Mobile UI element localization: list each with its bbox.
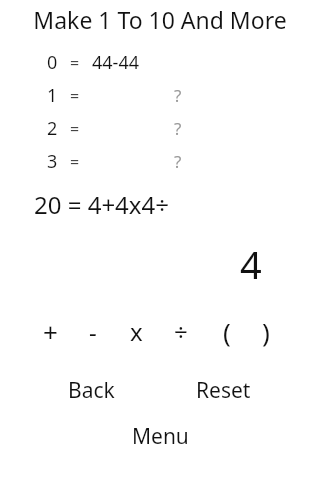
button[interactable]: ( [210,314,244,348]
staticText: 0 [47,50,58,75]
staticText: 1 [47,83,58,108]
staticText: Menu [132,422,189,451]
staticText: - [89,315,97,348]
button[interactable]: 2 [0,112,320,145]
staticText: 3 [47,149,58,174]
staticText: Make 1 To 10 And More [33,4,287,35]
staticText: Reset [196,376,251,402]
staticText: 4 [240,238,262,290]
button[interactable]: ) [249,314,283,348]
button[interactable]: - [76,314,110,348]
button[interactable]: Reset [186,372,261,406]
button[interactable]: 0 [0,46,320,79]
staticText: ? [174,84,182,107]
staticText: ) [262,314,270,348]
staticText: 2 [47,116,58,141]
staticText: = [70,52,80,74]
button[interactable]: x [119,314,153,348]
staticText: x [130,315,143,348]
staticText: ? [174,117,182,140]
staticText: 44-44 [92,50,139,75]
staticText: + [43,314,58,348]
staticText: Back [68,376,115,402]
staticText: = [70,151,80,173]
button[interactable]: 20 = 4+4x4÷ [0,180,320,228]
button[interactable]: 3 [0,145,320,178]
button[interactable]: Back [58,372,125,406]
button[interactable]: Menu [122,418,199,455]
button[interactable]: + [33,314,67,348]
button[interactable]: 1 [0,79,320,112]
button[interactable]: ÷ [164,314,198,348]
staticText: = [70,118,80,140]
staticText: 20 = 4+4x4÷ [34,188,169,221]
staticText: ÷ [174,315,188,348]
staticText: = [70,85,80,107]
staticText: ( [223,314,231,348]
staticText: ? [174,150,182,173]
